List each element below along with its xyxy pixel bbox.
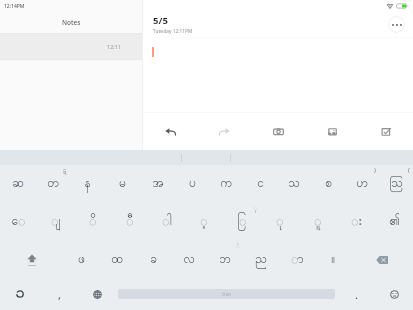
button[interactable]: Insert image bbox=[305, 113, 359, 150]
button[interactable]: ု bbox=[261, 203, 299, 241]
button[interactable]: ျ bbox=[37, 203, 74, 241]
button[interactable]: ည bbox=[243, 241, 279, 278]
button[interactable]: ီ bbox=[111, 203, 148, 241]
staticText: စ bbox=[325, 175, 332, 193]
staticText: Notes bbox=[62, 18, 81, 27]
staticText: လ bbox=[183, 251, 195, 269]
button[interactable]: , bbox=[40, 278, 78, 310]
button[interactable]: Undo bbox=[143, 113, 197, 150]
staticText: ျ bbox=[51, 213, 61, 231]
staticText: ူ bbox=[314, 213, 322, 231]
button[interactable]: င bbox=[243, 165, 277, 203]
staticText: ဆ bbox=[12, 175, 24, 193]
staticText: တ bbox=[47, 175, 59, 193]
button[interactable]: ့ bbox=[185, 203, 223, 241]
button[interactable]: Shift bbox=[0, 241, 63, 278]
button[interactable]: သ bbox=[277, 165, 311, 203]
button[interactable]: . bbox=[337, 278, 375, 310]
staticText: ာ bbox=[291, 251, 304, 269]
button[interactable]: ူ bbox=[299, 203, 337, 241]
staticText: ှ bbox=[254, 204, 258, 213]
button[interactable]: ဩ bbox=[379, 165, 413, 203]
button[interactable]: ာ bbox=[279, 241, 315, 278]
button[interactable]: ပ bbox=[175, 165, 209, 203]
button[interactable]: အ bbox=[140, 165, 175, 203]
staticText: 5/5 bbox=[153, 14, 168, 27]
button[interactable]: န bbox=[70, 165, 105, 203]
staticText: ( bbox=[408, 166, 410, 174]
staticText: ု bbox=[276, 213, 284, 231]
staticText: , bbox=[58, 287, 61, 302]
staticText: သ bbox=[288, 175, 300, 193]
button[interactable]: More options bbox=[388, 16, 405, 33]
button[interactable]: ဆ bbox=[0, 165, 35, 203]
button[interactable]: တ bbox=[35, 165, 70, 203]
staticText: မ bbox=[119, 175, 126, 193]
staticText: ဋ bbox=[63, 166, 67, 175]
button[interactable]: Change language bbox=[78, 278, 116, 310]
staticText: ီ bbox=[126, 213, 134, 231]
staticText: ိ bbox=[89, 213, 97, 231]
button[interactable]: ၏ bbox=[375, 203, 413, 241]
button[interactable]: လ bbox=[171, 241, 207, 278]
staticText: ့ bbox=[200, 213, 208, 231]
staticText: ေ bbox=[11, 213, 26, 231]
staticText: အ bbox=[152, 175, 164, 193]
staticText: Tuesday 12:11PM bbox=[153, 28, 193, 35]
button[interactable]: မ bbox=[105, 165, 140, 203]
button[interactable]: ထ bbox=[99, 241, 135, 278]
button[interactable]: ဘ bbox=[207, 241, 243, 278]
staticText: ါ bbox=[162, 213, 172, 231]
button[interactable]: Redo bbox=[197, 113, 251, 150]
button[interactable]: Backspace bbox=[351, 241, 413, 278]
button[interactable]: Camera bbox=[251, 113, 305, 150]
staticText: ။ bbox=[331, 251, 335, 269]
staticText: ) bbox=[374, 166, 376, 174]
button[interactable]: ါ bbox=[148, 203, 185, 241]
button[interactable]: ခ bbox=[135, 241, 171, 278]
button[interactable]: ။ bbox=[315, 241, 351, 278]
button[interactable]: Checklist bbox=[359, 113, 413, 150]
button[interactable]: ြ bbox=[223, 203, 261, 241]
staticText: 12:11 bbox=[107, 43, 122, 50]
button[interactable]: ဖ bbox=[63, 241, 99, 278]
staticText: န bbox=[84, 175, 91, 193]
staticText: က bbox=[220, 175, 232, 193]
staticText: ဗမာ bbox=[222, 290, 232, 299]
staticText: 12:14PM bbox=[4, 3, 25, 10]
staticText: ထ bbox=[111, 251, 123, 269]
staticText: ပ bbox=[189, 175, 196, 193]
staticText: ၏ bbox=[389, 213, 400, 231]
staticText: ံ bbox=[236, 242, 240, 251]
staticText: ြ bbox=[237, 213, 247, 231]
staticText: . bbox=[355, 287, 358, 302]
button[interactable]: ိ bbox=[74, 203, 111, 241]
button[interactable]: 12:11 bbox=[0, 34, 142, 59]
button[interactable]: Wa bbox=[0, 278, 40, 310]
staticText: ဖ bbox=[78, 251, 85, 269]
staticText: ဩ bbox=[389, 175, 403, 193]
staticText: ခ bbox=[150, 251, 157, 269]
button[interactable]: စ bbox=[311, 165, 345, 203]
staticText: း bbox=[351, 213, 362, 231]
staticText: ည bbox=[255, 251, 267, 269]
staticText: င bbox=[257, 175, 264, 193]
button[interactable]: း bbox=[337, 203, 375, 241]
button[interactable]: Emoji bbox=[375, 278, 413, 310]
button[interactable]: ေ bbox=[0, 203, 37, 241]
staticText: ဟ bbox=[356, 175, 368, 193]
button[interactable]: ဟ bbox=[345, 165, 379, 203]
button[interactable]: က bbox=[209, 165, 243, 203]
staticText: ဘ bbox=[219, 251, 231, 269]
